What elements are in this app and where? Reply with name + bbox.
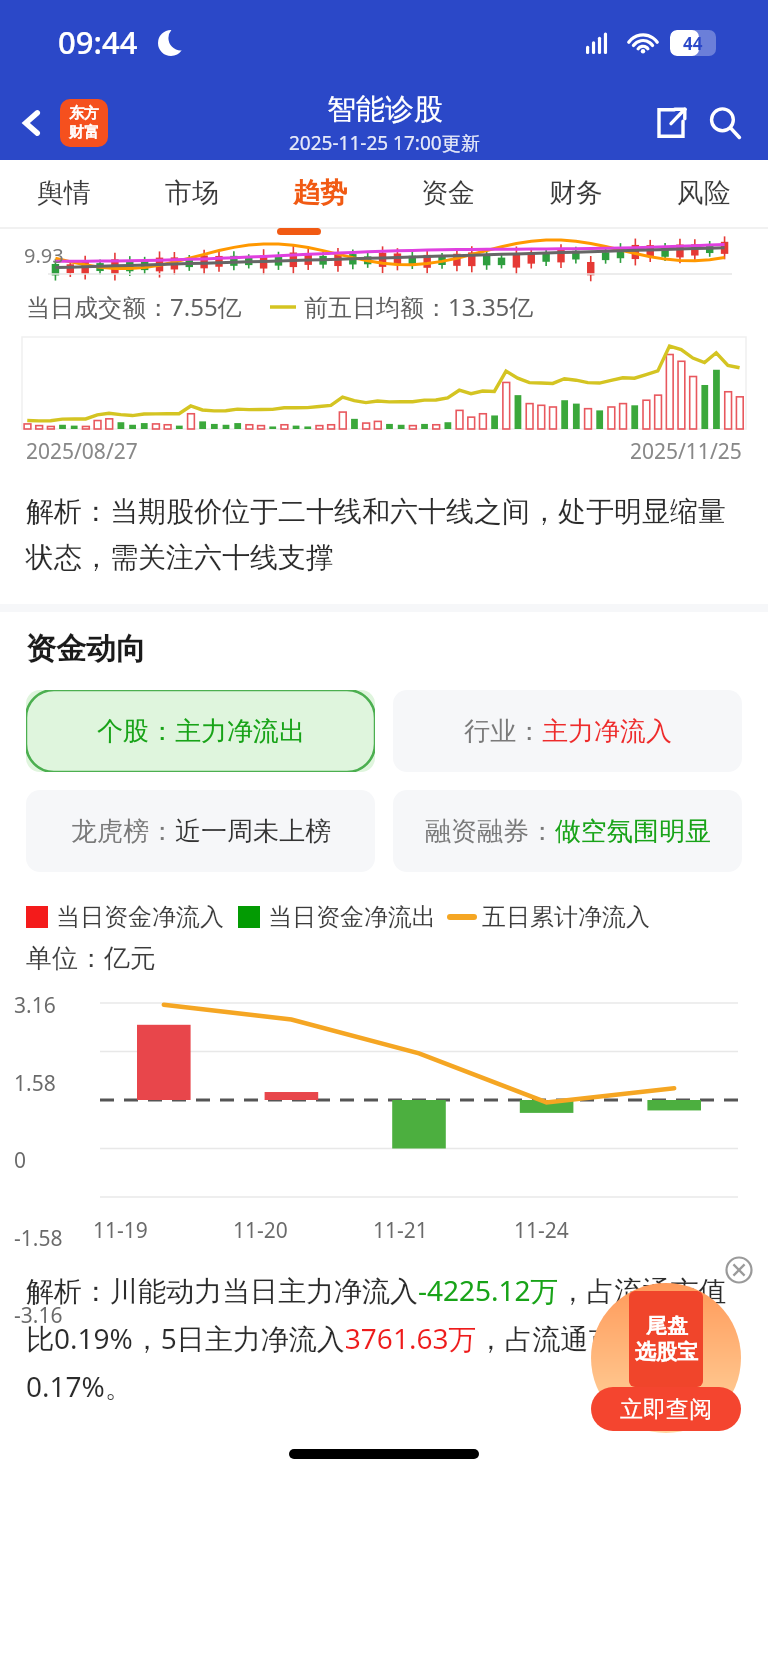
staticText: 2025/11/25: [630, 437, 742, 466]
staticText: 单位：亿元: [26, 942, 156, 975]
staticText: 09:44: [58, 21, 138, 63]
staticText: 风险: [677, 176, 731, 210]
staticText: 五日累计净流入: [482, 902, 650, 932]
button[interactable]: Close: [722, 1253, 756, 1287]
button[interactable]: 趋势: [256, 160, 384, 226]
staticText: 财务: [549, 176, 603, 210]
button[interactable]: 资金: [384, 160, 512, 226]
staticText: 近一周未上榜: [175, 815, 331, 848]
staticText: 44: [683, 32, 703, 55]
staticText: 市场: [165, 176, 219, 210]
staticText: 智能诊股: [327, 91, 443, 128]
staticText: 财富: [69, 123, 99, 142]
button[interactable]: 财务: [512, 160, 640, 226]
staticText: 融资融券：: [425, 815, 555, 848]
staticText: 立即查阅: [620, 1395, 712, 1424]
staticText: 11-21: [373, 1216, 428, 1245]
button[interactable]: 市场: [128, 160, 256, 226]
staticText: -3.16: [14, 1301, 63, 1330]
button[interactable]: 风险: [640, 160, 768, 226]
staticText: 尾盘: [646, 1313, 688, 1339]
button[interactable]: 个股：: [26, 690, 375, 772]
staticText: 当日资金净流入: [56, 902, 224, 932]
button[interactable]: [591, 1283, 741, 1433]
staticText: 11-19: [93, 1216, 148, 1245]
staticText: 龙虎榜：: [71, 815, 175, 848]
staticText: 前五日均额：13.35亿: [304, 290, 534, 323]
button[interactable]: Search: [698, 96, 752, 150]
staticText: 2025/08/27: [26, 437, 138, 466]
button[interactable]: East Money: [60, 99, 108, 147]
staticText: 3.16: [14, 991, 56, 1020]
staticText: 0: [14, 1146, 27, 1175]
staticText: 行业：: [464, 715, 542, 748]
button[interactable]: 行业：: [393, 690, 742, 772]
button[interactable]: Back: [8, 99, 56, 147]
staticText: 主力净流入: [542, 715, 672, 748]
staticText: 当日资金净流出: [268, 902, 436, 932]
staticText: 趋势: [293, 176, 347, 210]
staticText: 资金动向: [26, 630, 146, 668]
staticText: 做空氛围明显: [555, 815, 711, 848]
staticText: 资金: [421, 176, 475, 210]
staticText: 当日成交额：7.55亿: [26, 290, 242, 323]
staticText: -1.58: [14, 1224, 63, 1253]
button[interactable]: Share: [644, 96, 698, 150]
staticText: 东方: [69, 104, 99, 123]
staticText: 2025-11-25 17:00更新: [289, 130, 480, 156]
button[interactable]: 龙虎榜：: [26, 790, 375, 872]
staticText: 舆情: [37, 176, 91, 210]
staticText: 1.58: [14, 1069, 56, 1098]
staticText: 11-24: [514, 1216, 569, 1245]
button[interactable]: 舆情: [0, 160, 128, 226]
button[interactable]: 立即查阅: [591, 1387, 741, 1431]
staticText: 解析：川能动力当日主力净流入-4225.12万，占流通市值比0.19%，5日主力…: [26, 1271, 742, 1405]
staticText: 个股：: [97, 715, 175, 748]
staticText: 选股宝: [635, 1339, 698, 1365]
staticText: 11-20: [233, 1216, 288, 1245]
staticText: 解析：当期股价位于二十线和六十线之间，处于明显缩量状态，需关注六十线支撑: [26, 494, 742, 576]
button[interactable]: 融资融券：: [393, 790, 742, 872]
staticText: 主力净流出: [175, 715, 305, 748]
staticText: 9.93: [24, 242, 64, 269]
